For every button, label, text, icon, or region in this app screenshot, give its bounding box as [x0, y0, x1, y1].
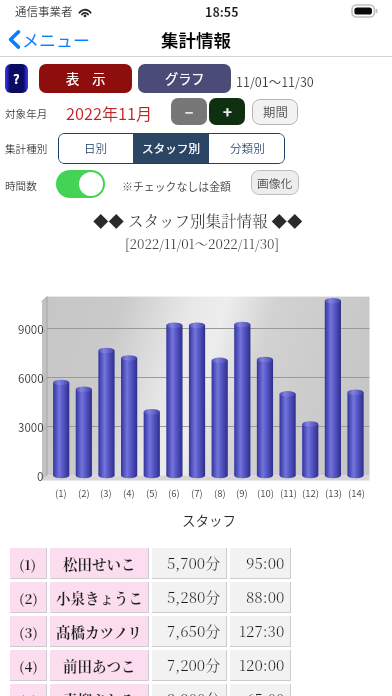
staticText: (2)	[78, 486, 90, 500]
button[interactable]: 青柳さとみ	[50, 684, 149, 696]
button[interactable]: 前田あつこ	[50, 650, 149, 681]
staticText: 通信事業者	[15, 3, 73, 20]
button[interactable]: 前の月	[171, 98, 207, 125]
staticText: (1)	[55, 486, 67, 500]
staticText: (3)	[19, 622, 38, 641]
button[interactable]: 5,280分	[152, 582, 227, 613]
staticText: 5,280分	[167, 586, 221, 608]
button[interactable]: 7,200分	[152, 650, 227, 681]
staticText: 2022年11月	[66, 101, 153, 124]
button[interactable]: 120:00	[230, 650, 291, 681]
staticText: (2)	[19, 588, 38, 607]
button[interactable]: 65:00	[230, 684, 291, 696]
staticText: 88:00	[246, 586, 285, 608]
staticText: (14)	[348, 486, 365, 500]
button[interactable]: メニュー	[7, 23, 92, 56]
staticText: −	[185, 102, 194, 122]
staticText: (1)	[19, 554, 37, 573]
button[interactable]: (4)	[10, 650, 47, 681]
staticText: 7,650分	[167, 620, 221, 642]
button[interactable]: グラフ	[138, 64, 231, 93]
button[interactable]: 画像化	[251, 170, 299, 195]
staticText: (11)	[280, 486, 297, 500]
staticText: 松田せいこ	[63, 553, 136, 574]
staticText: (5)	[146, 486, 158, 500]
staticText: 分類別	[230, 140, 265, 157]
staticText: [2022/11/01〜2022/11/30]	[125, 234, 280, 253]
staticText: 対象年月	[5, 106, 48, 121]
staticText: 3000	[18, 419, 44, 436]
staticText: 髙橋カツノリ	[56, 621, 142, 642]
button[interactable]: 127:30	[230, 616, 291, 647]
button[interactable]: 期間	[252, 99, 298, 125]
button[interactable]: 7,650分	[152, 616, 227, 647]
staticText: 95:00	[246, 552, 285, 574]
staticText: 小泉きょうこ	[56, 587, 143, 608]
staticText: 18:55	[205, 2, 239, 20]
staticText: (3)	[100, 486, 112, 500]
button[interactable]: 5,700分	[152, 548, 227, 579]
staticText: ◆◆ スタッフ別集計情報 ◆◆	[93, 209, 303, 231]
staticText: 3,900分	[167, 688, 221, 696]
button[interactable]: 88:00	[230, 582, 291, 613]
button[interactable]: 95:00	[230, 548, 291, 579]
button[interactable]: ヘルプ	[5, 64, 28, 93]
staticText: 6000	[18, 370, 44, 387]
staticText: グラフ	[165, 69, 205, 88]
button[interactable]: 松田せいこ	[50, 548, 149, 579]
button[interactable]: 時間数スイッチ	[56, 170, 105, 198]
staticText: 65:00	[246, 688, 285, 696]
staticText: 日別	[84, 140, 108, 157]
staticText: (12)	[302, 486, 319, 500]
button[interactable]: 小泉きょうこ	[50, 582, 149, 613]
staticText: 7,200分	[167, 654, 221, 676]
staticText: 表 示	[66, 69, 106, 88]
staticText: 11/01〜11/30	[236, 72, 314, 90]
staticText: (5)	[19, 690, 38, 696]
staticText: 青柳さとみ	[63, 689, 136, 696]
staticText: (6)	[168, 486, 180, 500]
staticText: メニュー	[22, 27, 90, 52]
staticText: 5,700分	[167, 552, 221, 574]
staticText: 集計情報	[161, 27, 231, 52]
staticText: 集計種別	[5, 141, 48, 156]
staticText: 9000	[18, 321, 44, 338]
staticText: スタッフ別	[142, 140, 200, 157]
staticText: (7)	[191, 486, 203, 500]
button[interactable]: (2)	[10, 582, 47, 613]
button[interactable]: 髙橋カツノリ	[50, 616, 149, 647]
staticText: (4)	[123, 486, 135, 500]
staticText: 120:00	[239, 654, 285, 676]
button[interactable]: 次の月	[209, 98, 245, 125]
staticText: (9)	[236, 486, 248, 500]
button[interactable]: 3,900分	[152, 684, 227, 696]
staticText: +	[223, 101, 232, 123]
staticText: (13)	[325, 486, 342, 500]
button[interactable]: (3)	[10, 616, 47, 647]
button[interactable]: 日別	[58, 133, 133, 164]
staticText: (10)	[257, 486, 274, 500]
staticText: ※チェックなしは金額	[122, 178, 231, 194]
staticText: 0	[37, 468, 44, 485]
button[interactable]: (5)	[10, 684, 47, 696]
staticText: 期間	[263, 103, 288, 121]
button[interactable]: (1)	[10, 548, 47, 579]
staticText: 前田あつこ	[63, 655, 136, 676]
staticText: ?	[13, 69, 20, 88]
staticText: 127:30	[239, 620, 285, 642]
staticText: スタッフ	[182, 510, 236, 530]
staticText: (4)	[19, 656, 38, 675]
staticText: 画像化	[257, 174, 293, 191]
button[interactable]: 分類別	[209, 133, 285, 164]
button[interactable]: 表 示	[39, 64, 132, 93]
staticText: 時間数	[5, 178, 37, 193]
button[interactable]: スタッフ別	[133, 133, 209, 164]
staticText: (8)	[214, 486, 226, 500]
